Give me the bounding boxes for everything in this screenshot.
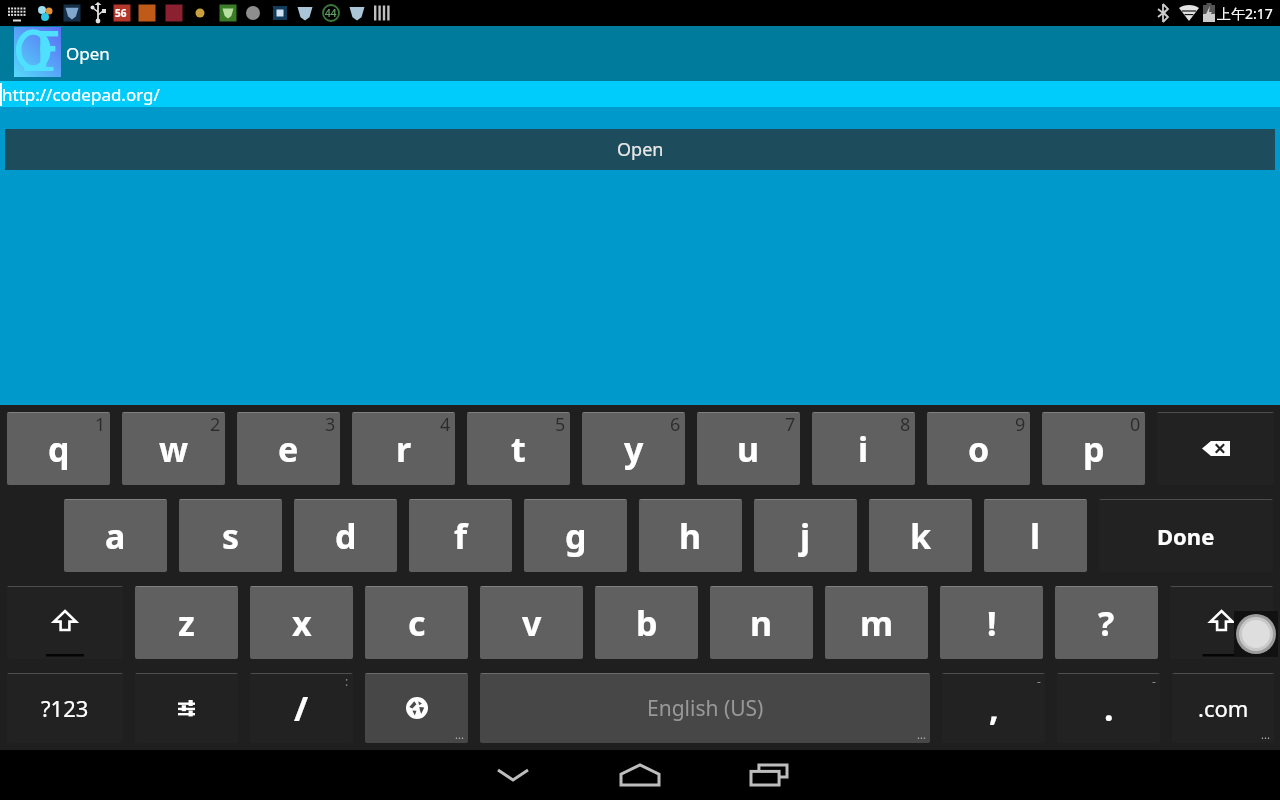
button[interactable]: n	[710, 586, 813, 659]
staticText: g	[565, 513, 587, 559]
staticText: 56	[115, 6, 127, 20]
button[interactable]: i	[812, 412, 915, 485]
staticText: q	[48, 426, 70, 472]
staticText: 4	[440, 412, 451, 437]
staticText: h	[679, 513, 702, 559]
button[interactable]: Home	[604, 750, 676, 800]
button[interactable]: Backspace	[1157, 412, 1274, 485]
staticText: 1	[95, 412, 106, 437]
staticText: 5	[555, 412, 566, 437]
button[interactable]: Recent apps	[733, 750, 805, 800]
staticText: ?	[1098, 600, 1115, 646]
staticText: ?123	[41, 693, 89, 723]
staticText: m	[860, 600, 894, 646]
button[interactable]: ?	[1055, 586, 1158, 659]
other: Shift	[1170, 586, 1273, 659]
staticText: 44	[325, 6, 337, 20]
staticText: -	[1152, 673, 1156, 689]
staticText: r	[396, 426, 412, 472]
staticText: ...	[455, 727, 464, 742]
staticText: i	[858, 426, 869, 472]
staticText: a	[105, 513, 126, 559]
staticText: 上午2:17	[1217, 4, 1273, 23]
button[interactable]: .	[1057, 673, 1160, 743]
staticText: e	[278, 426, 299, 472]
staticText: http://codepad.org/	[2, 83, 160, 106]
staticText: o	[968, 426, 990, 472]
button[interactable]: ,	[942, 673, 1045, 743]
button[interactable]: r	[352, 412, 455, 485]
staticText: Done	[1157, 521, 1215, 551]
staticText: .com	[1198, 693, 1249, 723]
staticText: n	[750, 600, 773, 646]
staticText: 6	[670, 412, 681, 437]
staticText: t	[511, 426, 526, 472]
button[interactable]: z	[135, 586, 238, 659]
button[interactable]: Shift	[7, 586, 123, 659]
button[interactable]: Done	[1099, 499, 1273, 572]
button[interactable]: !	[940, 586, 1043, 659]
button[interactable]: q	[7, 412, 110, 485]
staticText: 7	[785, 412, 796, 437]
other: Change language	[406, 697, 428, 719]
staticText: f	[454, 513, 468, 559]
staticText: .	[1104, 685, 1114, 731]
button[interactable]: y	[582, 412, 685, 485]
button[interactable]: .com	[1172, 673, 1274, 743]
staticText: Open	[66, 42, 110, 65]
button[interactable]: h	[639, 499, 742, 572]
button[interactable]: English (US)	[480, 673, 930, 743]
staticText: d	[335, 513, 357, 559]
button[interactable]: v	[480, 586, 583, 659]
staticText: k	[910, 513, 932, 559]
staticText: ...	[1261, 727, 1270, 742]
button[interactable]: m	[825, 586, 928, 659]
staticText: l	[1030, 513, 1041, 559]
other: Shift	[7, 586, 123, 659]
staticText: !	[987, 600, 997, 646]
button[interactable]: g	[524, 499, 627, 572]
staticText: x	[292, 600, 312, 646]
button[interactable]: o	[927, 412, 1030, 485]
staticText: b	[636, 600, 658, 646]
staticText: 8	[900, 412, 911, 437]
button[interactable]: f	[409, 499, 512, 572]
staticText: /	[294, 685, 309, 731]
button[interactable]: /	[250, 673, 353, 743]
staticText: s	[222, 513, 240, 559]
button[interactable]: Hide keyboard	[477, 750, 549, 800]
staticText: z	[178, 600, 195, 646]
button[interactable]: t	[467, 412, 570, 485]
button[interactable]: b	[595, 586, 698, 659]
staticText: 9	[1015, 412, 1026, 437]
button[interactable]: p	[1042, 412, 1145, 485]
staticText: w	[159, 426, 189, 472]
button[interactable]: a	[64, 499, 167, 572]
staticText: ...	[917, 727, 926, 742]
button[interactable]: l	[984, 499, 1087, 572]
button[interactable]: k	[869, 499, 972, 572]
button[interactable]: Open	[5, 129, 1275, 170]
button[interactable]: c	[365, 586, 468, 659]
staticText: p	[1083, 426, 1105, 472]
button[interactable]: x	[250, 586, 353, 659]
other: Input settings	[178, 701, 195, 716]
button[interactable]: w	[122, 412, 225, 485]
staticText: c	[408, 600, 426, 646]
button[interactable]: Shift	[1170, 586, 1273, 659]
button[interactable]: j	[754, 499, 857, 572]
button[interactable]: Input settings	[135, 673, 238, 743]
button[interactable]: e	[237, 412, 340, 485]
staticText: :	[345, 673, 349, 689]
button[interactable]: Change language	[365, 673, 468, 743]
staticText: Open	[617, 137, 664, 162]
button[interactable]: s	[179, 499, 282, 572]
staticText: j	[800, 513, 811, 559]
staticText: u	[737, 426, 760, 472]
staticText: 2	[210, 412, 221, 437]
button[interactable]: ?123	[7, 673, 123, 743]
other: Backspace	[1202, 441, 1230, 456]
staticText: -	[1037, 673, 1041, 689]
button[interactable]: u	[697, 412, 800, 485]
button[interactable]: d	[294, 499, 397, 572]
